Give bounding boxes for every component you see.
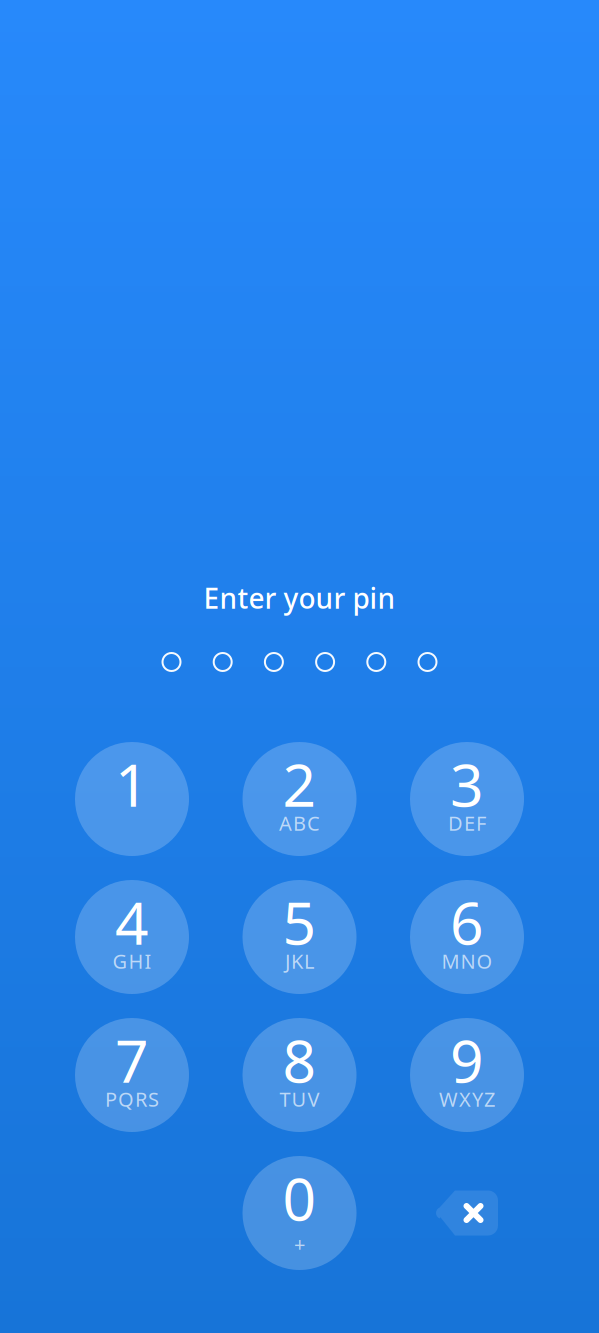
staticText: 7 [115, 1021, 149, 1099]
button[interactable]: 7 [75, 1018, 189, 1132]
staticText: 9 [450, 1021, 484, 1099]
button[interactable]: 1 [75, 742, 189, 856]
staticText: 8 [282, 1021, 316, 1099]
button[interactable]: 3 [410, 742, 524, 856]
button[interactable]: 6 [410, 880, 524, 994]
button[interactable]: 5 [242, 880, 356, 994]
staticText: Enter your pin [203, 579, 395, 617]
staticText: 5 [282, 883, 316, 961]
button[interactable]: Delete [410, 1156, 524, 1270]
button[interactable]: 4 [75, 880, 189, 994]
staticText: 0 [282, 1159, 316, 1237]
staticText: ABC [279, 810, 320, 836]
button[interactable]: 8 [242, 1018, 356, 1132]
staticText: GHI [112, 948, 151, 974]
staticText: 3 [450, 745, 484, 823]
staticText: JKL [285, 948, 314, 974]
button[interactable]: 0 [242, 1156, 356, 1270]
staticText: 4 [115, 883, 149, 961]
staticText: MNO [441, 948, 492, 974]
staticText: + [294, 1231, 305, 1257]
staticText: 2 [282, 745, 316, 823]
button[interactable]: 9 [410, 1018, 524, 1132]
staticText: DEF [448, 810, 486, 836]
staticText: 6 [450, 883, 484, 961]
button[interactable]: 2 [242, 742, 356, 856]
staticText: WXYZ [439, 1086, 495, 1112]
staticText: 1 [115, 745, 149, 823]
staticText: TUV [279, 1086, 319, 1112]
staticText: PQRS [105, 1086, 159, 1112]
